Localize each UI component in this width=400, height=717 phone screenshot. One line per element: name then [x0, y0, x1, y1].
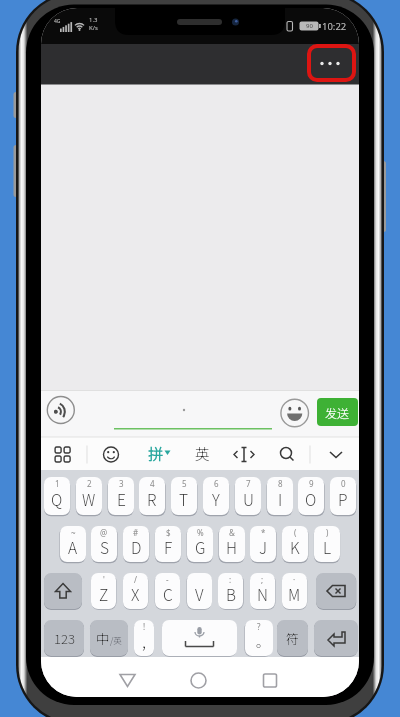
button[interactable]: )	[314, 526, 340, 562]
staticText: ?	[257, 621, 261, 631]
button[interactable]: 符	[277, 620, 308, 656]
staticText: 6	[214, 478, 219, 488]
button[interactable]: ~	[60, 526, 86, 562]
staticText: A	[68, 536, 78, 558]
staticText: 。	[256, 632, 270, 651]
button[interactable]: 5	[171, 477, 197, 515]
button[interactable]: *	[250, 526, 276, 562]
staticText: 4G	[54, 18, 61, 25]
staticText: M	[288, 583, 301, 605]
button[interactable]	[44, 573, 82, 609]
button[interactable]: 8	[267, 477, 293, 515]
button[interactable]	[162, 620, 237, 656]
button[interactable]	[94, 437, 128, 470]
staticText: /英	[110, 634, 122, 646]
button[interactable]: 9	[298, 477, 324, 515]
staticText: O	[305, 488, 317, 510]
button[interactable]: 123	[44, 620, 84, 656]
staticText: $	[166, 527, 171, 537]
button[interactable]: '	[91, 573, 116, 609]
button[interactable]: (	[282, 526, 308, 562]
staticText: 中	[96, 628, 110, 648]
staticText: H	[226, 536, 238, 558]
staticText: ~	[71, 527, 76, 537]
button[interactable]: ;	[250, 573, 275, 609]
staticText: U	[243, 488, 254, 510]
button[interactable]: _	[187, 573, 212, 609]
button[interactable]	[269, 437, 303, 470]
staticText: D	[131, 536, 142, 558]
button[interactable]	[227, 437, 261, 470]
button[interactable]: /	[123, 573, 148, 609]
staticText: #	[133, 527, 139, 537]
staticText: G	[195, 536, 206, 558]
staticText: P	[338, 488, 348, 510]
staticText: 英	[195, 443, 211, 465]
staticText: K	[290, 536, 300, 558]
button[interactable]: :	[218, 573, 243, 609]
button[interactable]: 3	[108, 477, 134, 515]
staticText: S	[100, 536, 109, 558]
button[interactable]	[316, 573, 356, 609]
button[interactable]: 中	[90, 620, 128, 656]
staticText: 123	[54, 629, 75, 648]
staticText: 3	[119, 478, 124, 488]
staticText: Q	[51, 488, 63, 510]
button[interactable]: &	[219, 526, 245, 562]
staticText: Y	[212, 488, 220, 510]
staticText: )	[326, 527, 329, 537]
button[interactable]: ·	[282, 573, 307, 609]
staticText: 90	[306, 22, 313, 30]
staticText: 7	[246, 478, 251, 488]
button[interactable]	[314, 620, 358, 656]
staticText: 0	[341, 478, 346, 488]
staticText: 4	[150, 478, 155, 488]
button[interactable]: $	[155, 526, 181, 562]
staticText: ;	[261, 574, 264, 584]
staticText: V	[195, 583, 204, 605]
staticText: @	[100, 527, 108, 537]
staticText: ,	[142, 630, 146, 652]
button[interactable]: !	[134, 620, 154, 656]
button[interactable]	[319, 437, 353, 470]
button[interactable]: 4	[139, 477, 165, 515]
button[interactable]: 发送	[317, 398, 358, 426]
button[interactable]	[280, 398, 309, 427]
staticText: ·	[293, 574, 296, 584]
button[interactable]	[307, 44, 356, 82]
button[interactable]	[98, 658, 158, 696]
button[interactable]: %	[187, 526, 213, 562]
staticText: 符	[286, 629, 300, 648]
staticText: B	[226, 583, 236, 605]
button[interactable]: #	[123, 526, 149, 562]
button[interactable]	[142, 437, 176, 470]
button[interactable]: 0	[330, 477, 356, 515]
button[interactable]: 7	[235, 477, 261, 515]
staticText: E	[117, 488, 126, 510]
staticText: 5	[182, 478, 187, 488]
button[interactable]	[240, 658, 300, 696]
staticText: %	[197, 527, 204, 537]
staticText: L	[323, 536, 332, 558]
staticText: T	[179, 488, 189, 510]
staticText: W	[82, 488, 96, 510]
button[interactable]	[46, 396, 75, 425]
button[interactable]	[186, 437, 220, 470]
button[interactable]	[169, 658, 229, 696]
button[interactable]: 1	[44, 477, 70, 515]
button[interactable]: -	[155, 573, 180, 609]
button[interactable]	[46, 437, 80, 470]
staticText: Z	[99, 583, 109, 605]
button[interactable]: ?	[245, 620, 273, 656]
staticText: 9	[309, 478, 314, 488]
button[interactable]: @	[91, 526, 117, 562]
staticText: F	[164, 536, 173, 558]
button[interactable]: 2	[76, 477, 102, 515]
staticText: K/s	[89, 24, 98, 32]
staticText: 2	[87, 478, 92, 488]
button[interactable]: 6	[203, 477, 229, 515]
staticText: 拼	[148, 443, 164, 465]
staticText: N	[257, 583, 268, 605]
staticText: C	[163, 583, 173, 605]
staticText: '	[103, 574, 105, 584]
